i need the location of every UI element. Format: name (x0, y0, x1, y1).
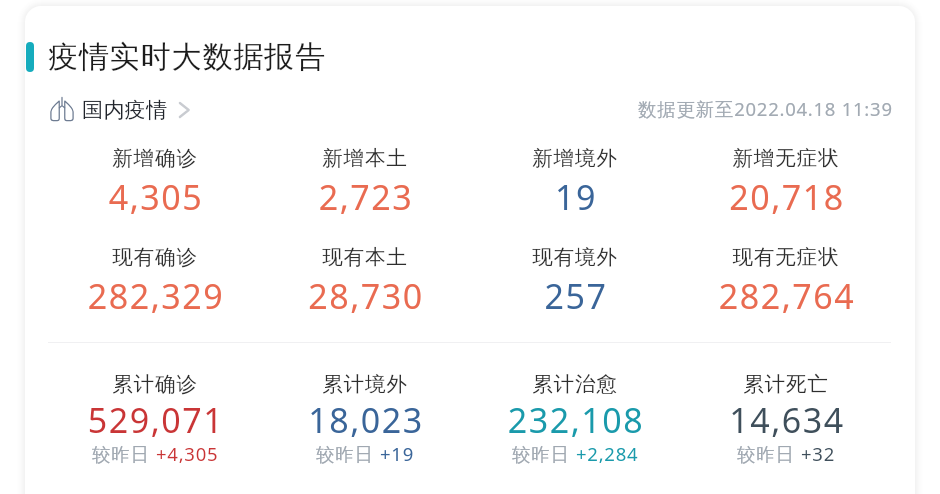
staticText: 新增确诊 (0, 145, 315, 171)
staticText: 新增境外 (415, 145, 735, 171)
staticText: 232,108 (416, 397, 736, 443)
button[interactable] (260, 138, 470, 220)
button[interactable] (50, 138, 260, 220)
staticText: 数据更新至2022.04.18 11:39 (638, 96, 893, 121)
button[interactable] (470, 138, 680, 220)
staticText: 较昨日 (92, 441, 156, 466)
button[interactable] (681, 237, 891, 319)
staticText: 282,329 (0, 273, 316, 319)
staticText: 较昨日 (316, 441, 380, 466)
button[interactable] (681, 364, 891, 470)
staticText: 现有无症状 (626, 244, 940, 270)
button[interactable] (50, 364, 260, 470)
staticText: 529,071 (0, 397, 316, 443)
staticText: +19 (380, 441, 414, 466)
staticText: 累计治愈 (415, 371, 735, 397)
staticText: 国内疫情 (82, 97, 168, 123)
staticText: 现有境外 (415, 244, 735, 270)
staticText: 14,634 (627, 397, 940, 443)
staticText: +4,305 (156, 441, 219, 466)
staticText: 累计境外 (205, 371, 525, 397)
staticText: 现有确诊 (0, 244, 315, 270)
staticText: 2,723 (206, 174, 526, 220)
staticText: 累计死亡 (626, 371, 940, 397)
staticText: +2,284 (576, 441, 639, 466)
staticText: 较昨日 (512, 441, 576, 466)
button[interactable] (470, 364, 680, 470)
staticText: 28,730 (206, 273, 526, 319)
staticText: 257 (416, 273, 736, 319)
staticText: 20,718 (627, 174, 940, 220)
button[interactable] (470, 237, 680, 319)
staticText: +32 (801, 441, 835, 466)
staticText: 新增本土 (205, 145, 525, 171)
button[interactable] (260, 237, 470, 319)
staticText: 较昨日 (737, 441, 801, 466)
button[interactable]: 国内疫情 (46, 92, 196, 126)
staticText: 现有本土 (205, 244, 525, 270)
staticText: 19 (416, 174, 736, 220)
button[interactable] (260, 364, 470, 470)
staticText: 疫情实时大数据报告 (48, 38, 327, 76)
staticText: 282,764 (627, 273, 940, 319)
staticText: 18,023 (206, 397, 526, 443)
staticText: 新增无症状 (626, 145, 940, 171)
button[interactable] (681, 138, 891, 220)
button[interactable] (50, 237, 260, 319)
other: 国内疫情 (50, 97, 74, 121)
staticText: 累计确诊 (0, 371, 315, 397)
staticText: 4,305 (0, 174, 316, 220)
